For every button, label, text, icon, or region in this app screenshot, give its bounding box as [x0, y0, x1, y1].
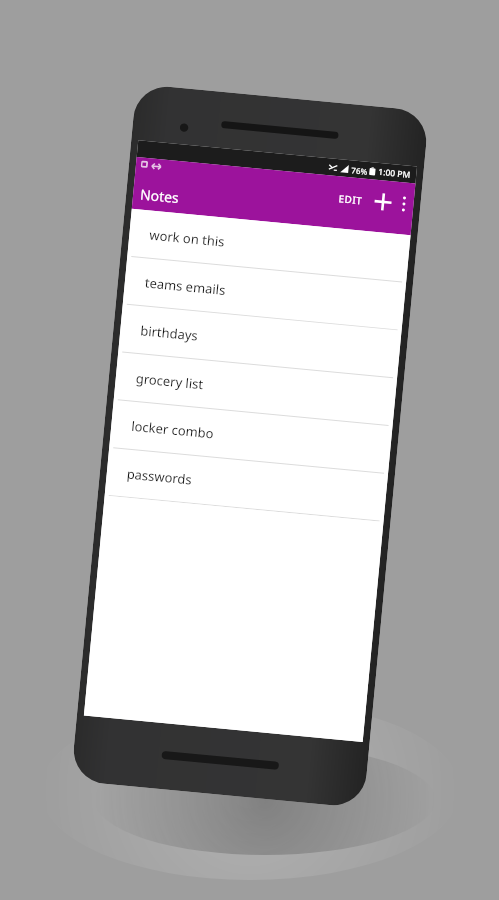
staticText: 76% — [351, 164, 368, 177]
staticText: locker combo — [130, 417, 215, 442]
staticText: teams emails — [144, 273, 226, 299]
staticText: birthdays — [140, 321, 199, 345]
button[interactable]: More options — [395, 192, 412, 216]
staticText: Notes — [139, 185, 180, 207]
button[interactable]: teams emails — [123, 257, 406, 331]
button[interactable]: Add note — [368, 187, 398, 217]
staticText: work on this — [149, 226, 226, 251]
staticText: EDIT — [338, 191, 363, 207]
button[interactable]: passwords — [105, 448, 388, 522]
staticText: passwords — [126, 465, 193, 489]
button[interactable]: EDIT — [331, 186, 371, 213]
staticText: 1:00 PM — [378, 166, 412, 181]
button[interactable]: grocery list — [114, 352, 397, 426]
staticText: grocery list — [135, 369, 204, 393]
button[interactable]: birthdays — [118, 304, 401, 378]
button[interactable]: work on this — [127, 209, 411, 283]
button[interactable]: locker combo — [109, 400, 392, 474]
